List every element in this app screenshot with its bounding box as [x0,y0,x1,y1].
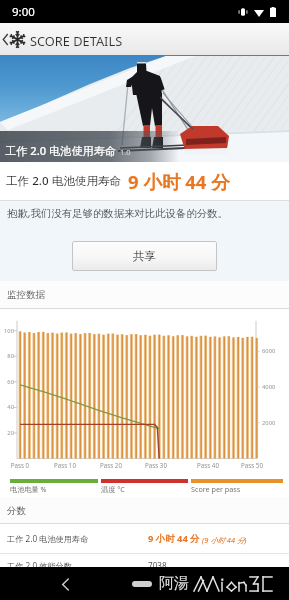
staticText: 40 [0,403,14,411]
staticText: 工作 2.0 效能分数 [7,560,72,571]
staticText: 2000 [262,419,276,427]
staticText: Pass 40 [192,461,224,469]
staticText: Pass 50 [236,461,268,469]
staticText: 共享 [133,249,156,263]
staticText: Pass 0 [4,461,36,469]
staticText: 1.0 [120,147,131,157]
staticText: 9 小时 44 分 [128,169,230,194]
staticText: 9 小时 44 分 [148,532,200,545]
button[interactable]: 共享 [72,241,217,271]
staticText: 温度 °C [101,484,125,494]
staticText: 工作 2.0 电池使用寿命 [7,533,89,544]
button[interactable]: Back [53,572,77,596]
staticText: SCORE DETAILS [30,32,123,49]
staticText: 4000 [262,383,276,391]
staticText: 6000 [262,347,276,355]
staticText: Score per pass [191,484,241,494]
staticText: 分数 [7,505,27,517]
staticText: 80 [0,352,14,360]
staticText: 60 [0,378,14,386]
staticText: 100 [0,327,14,335]
staticText: 工作 2.0 电池使用寿命 [5,143,117,158]
staticText: Pass 20 [95,461,127,469]
staticText: 监控数据 [7,289,46,301]
staticText: 抱歉,我们没有足够的数据来对比此设备的分数。 [7,206,228,220]
staticText: 20 [0,429,14,437]
button[interactable]: Back [0,25,11,53]
staticText: 电池电量 % [10,484,47,494]
staticText: Pass 30 [140,461,172,469]
staticText: 工作 2.0 电池使用寿命 [6,173,122,189]
staticText: 阿湯 [159,574,189,593]
staticText: 9:00 [12,4,35,20]
staticText: Pass 10 [49,461,81,469]
staticText: (9 小时 44 分) [202,535,247,545]
staticText: 7038 [148,560,167,571]
